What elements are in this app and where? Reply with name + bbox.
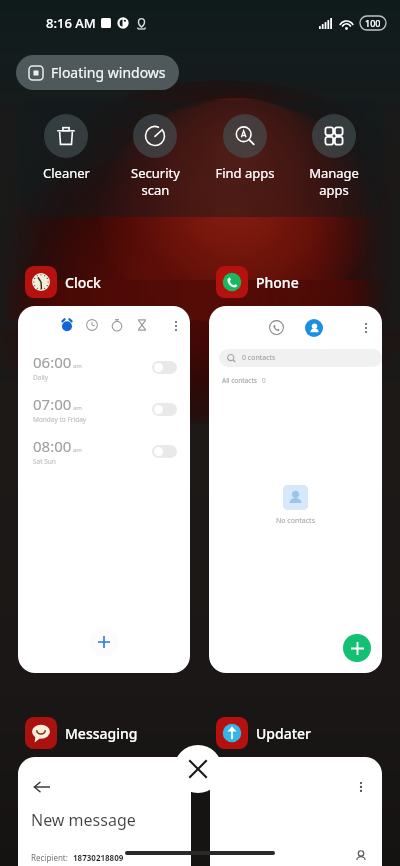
button[interactable]: Phone <box>216 266 299 298</box>
button[interactable]: Back <box>32 777 52 797</box>
button[interactable]: 08:00 <box>33 436 177 466</box>
button[interactable]: Find apps <box>204 114 286 182</box>
button[interactable]: Close <box>174 745 222 793</box>
button[interactable]: Cleaner <box>25 114 107 182</box>
button[interactable]: Clock <box>25 266 101 298</box>
button[interactable] <box>152 361 177 374</box>
button[interactable]: Floating windows <box>16 55 179 90</box>
staticText: 06:00 <box>33 352 72 372</box>
button[interactable]: Contacts <box>305 319 323 337</box>
staticText: Daily <box>33 373 49 382</box>
staticText: 07:00 <box>33 394 72 414</box>
staticText: Recipient: <box>31 852 68 863</box>
button[interactable]: Updater <box>216 717 312 749</box>
button[interactable]: Timer <box>136 319 148 331</box>
button[interactable]: Select contact <box>353 849 369 865</box>
button[interactable]: More options <box>169 319 183 333</box>
button[interactable]: Add alarm <box>89 627 119 657</box>
staticText: am <box>73 404 82 412</box>
staticText: Updater <box>256 724 312 743</box>
staticText: am <box>73 362 82 370</box>
button[interactable]: Alarm <box>61 319 73 331</box>
staticText: am <box>73 446 82 454</box>
staticText: Manage apps <box>309 164 359 199</box>
button[interactable]: World clock <box>86 319 98 331</box>
button[interactable]: Security scan <box>114 114 196 199</box>
button[interactable]: 0 contacts <box>219 349 382 367</box>
button[interactable]: Add contact <box>343 634 371 662</box>
staticText: 18730218809 <box>73 852 124 863</box>
staticText: New message <box>31 809 136 831</box>
button[interactable]: Stopwatch <box>111 319 123 331</box>
staticText: 100 <box>365 17 381 29</box>
staticText: 08:00 <box>33 436 72 456</box>
staticText: 0 <box>262 376 266 385</box>
staticText: All contacts <box>222 376 257 385</box>
button[interactable]: 07:00 <box>33 394 177 424</box>
staticText: Monday to Friday <box>33 415 87 424</box>
staticText: 8:16 AM <box>46 14 96 32</box>
button[interactable]: Manage apps <box>293 114 375 199</box>
button[interactable]: Messaging <box>25 717 138 749</box>
staticText: Find apps <box>215 164 275 182</box>
staticText: Cleaner <box>43 164 90 182</box>
button[interactable] <box>152 403 177 416</box>
button[interactable]: 06:00 <box>33 352 177 382</box>
button[interactable] <box>152 445 177 458</box>
staticText: Phone <box>256 273 299 292</box>
staticText: 0 contacts <box>242 353 276 363</box>
staticText: Clock <box>65 273 101 292</box>
staticText: Security scan <box>131 164 180 199</box>
button[interactable]: Recent calls <box>269 320 284 335</box>
staticText: Sat Sun <box>33 457 56 466</box>
staticText: Floating windows <box>51 63 166 82</box>
button[interactable]: More options <box>354 780 368 794</box>
button[interactable]: More options <box>359 321 373 335</box>
staticText: Messaging <box>65 724 138 743</box>
staticText: No contacts <box>276 516 315 526</box>
